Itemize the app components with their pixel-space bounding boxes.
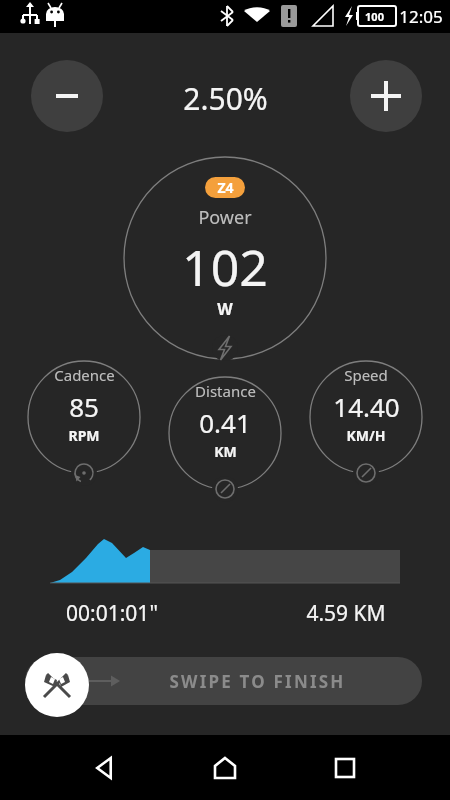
button[interactable]: Finish ride xyxy=(25,653,89,717)
button[interactable]: Increase gradient xyxy=(350,60,422,132)
staticText: 00:01:01" xyxy=(66,599,158,628)
button[interactable]: Recent apps xyxy=(315,745,375,790)
staticText: Z4 xyxy=(217,178,234,197)
staticText: 0.41 xyxy=(199,405,251,439)
staticText: Cadence xyxy=(54,365,115,385)
staticText: 100 xyxy=(365,9,384,24)
staticText: KM/H xyxy=(346,426,386,445)
staticText: 85 xyxy=(69,389,99,423)
staticText: SWIPE TO FINISH xyxy=(169,670,346,693)
button[interactable]: Home xyxy=(195,745,255,790)
button[interactable]: Speed xyxy=(310,351,422,463)
staticText: 12:05 xyxy=(399,5,443,28)
button[interactable]: Back xyxy=(75,745,135,790)
button[interactable]: SWIPE TO FINISH xyxy=(25,657,422,705)
staticText: RPM xyxy=(68,426,100,445)
staticText: 2.50% xyxy=(183,78,268,116)
staticText: W xyxy=(217,298,233,320)
staticText: Distance xyxy=(195,381,256,401)
staticText: 4.59 KM xyxy=(306,599,386,628)
staticText: Power xyxy=(198,205,252,229)
staticText: 14.40 xyxy=(333,389,400,423)
staticText: 102 xyxy=(182,233,268,293)
button[interactable]: Distance xyxy=(169,367,281,479)
button[interactable]: Cadence xyxy=(28,351,140,463)
button[interactable]: Decrease gradient xyxy=(31,60,103,132)
staticText: Speed xyxy=(344,365,388,385)
staticText: KM xyxy=(214,442,237,461)
